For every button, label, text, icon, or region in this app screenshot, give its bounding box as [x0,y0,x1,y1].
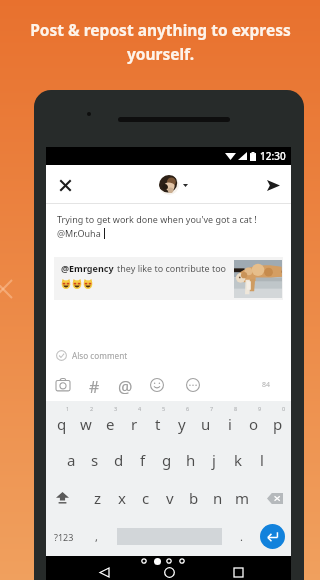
button[interactable]: j [202,441,226,479]
staticText: 0 [282,405,286,412]
button[interactable]: l [250,441,274,479]
button[interactable]: g [155,441,179,479]
staticText: t [155,414,161,434]
button[interactable]: Recents [226,560,250,580]
staticText: f [140,450,146,470]
staticText: 9 [258,405,262,412]
staticText: c [142,488,150,508]
staticText: @Mr.Ouha [57,227,101,239]
staticText: a [67,450,76,470]
button[interactable]: z [86,479,110,517]
staticText: l [260,450,264,470]
staticText: i [228,414,232,434]
button[interactable]: 0 [266,401,290,441]
staticText: v [166,488,174,508]
button[interactable]: 6 [170,401,194,441]
button[interactable]: . [231,517,251,556]
staticText: w [80,414,92,434]
button[interactable]: 1 [50,401,74,441]
button[interactable]: Backspace [261,479,289,517]
button[interactable]: # [85,376,103,394]
staticText: o [249,414,259,434]
staticText: 3 [114,405,118,412]
button[interactable]: v [158,479,182,517]
button[interactable]: f [131,441,155,479]
staticText: # [89,376,100,394]
staticText: 4 [138,405,142,412]
button[interactable]: 2 [74,401,98,441]
staticText: k [234,450,243,470]
staticText: q [57,414,67,434]
staticText: p [273,414,283,434]
button[interactable]: s [83,441,107,479]
staticText: 8 [234,405,238,412]
staticText: m [235,488,250,508]
staticText: h [186,450,196,470]
staticText: x [118,488,126,508]
staticText: 12:30 [260,149,286,163]
button[interactable]: Home [157,560,181,580]
staticText: ?123 [54,531,74,543]
button[interactable]: 5 [146,401,170,441]
staticText: , [95,529,98,544]
staticText: b [189,488,199,508]
button[interactable]: 4 [122,401,146,441]
staticText: @ [118,376,133,394]
staticText: e [106,414,115,434]
staticText: Post & repost anything to express yourse… [30,19,291,65]
staticText: y [178,414,186,434]
staticText: n [213,488,223,508]
staticText: 1 [66,405,70,412]
button[interactable]: b [182,479,206,517]
button[interactable]: Emoji [148,376,166,394]
button[interactable]: 3 [98,401,122,441]
button[interactable]: Back [92,560,116,580]
button[interactable]: c [134,479,158,517]
button[interactable]: Shift [50,479,74,517]
staticText: @Emrgency [61,262,114,274]
button[interactable]: , [86,517,106,556]
button[interactable]: x [110,479,134,517]
button[interactable]: Enter [260,524,285,549]
staticText: 5 [162,405,166,412]
staticText: 84 [262,380,271,390]
button[interactable]: Camera [54,376,72,394]
staticText: j [212,450,216,470]
button[interactable]: d [107,441,131,479]
button[interactable]: h [179,441,203,479]
button[interactable]: 9 [242,401,266,441]
staticText: Trying to get work done when you've got … [57,213,257,225]
button[interactable]: Send [259,171,287,199]
staticText: 7 [210,405,214,412]
button[interactable]: Close [51,171,79,199]
staticText: g [162,450,172,470]
button[interactable]: 7 [194,401,218,441]
button[interactable] [159,175,188,195]
staticText: they like to contribute too [117,262,227,274]
staticText: 2 [90,405,94,412]
staticText: . [240,529,243,544]
button[interactable]: More [184,376,202,394]
button[interactable]: n [206,479,230,517]
button[interactable]: @ [116,376,134,394]
button[interactable]: k [226,441,250,479]
staticText: 6 [186,405,190,412]
button[interactable]: ?123 [48,517,80,556]
staticText: d [114,450,124,470]
staticText: s [91,450,99,470]
staticText: r [131,414,138,434]
button[interactable]: m [230,479,254,517]
staticText: u [201,414,211,434]
staticText: Also comment [72,350,128,361]
button[interactable]: 8 [218,401,242,441]
staticText: z [94,488,102,508]
button[interactable]: a [59,441,83,479]
